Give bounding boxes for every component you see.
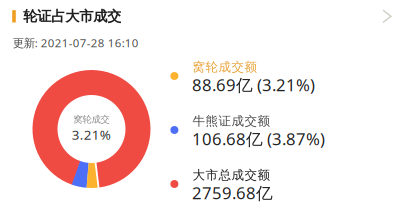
staticText: 轮证占大市成交 xyxy=(23,7,121,25)
staticText: 牛熊证成交额 xyxy=(193,113,271,129)
staticText: 窝轮成交额 xyxy=(193,59,258,75)
button[interactable]: 轮证占大市成交 xyxy=(0,0,400,33)
staticText: 大市总成交额 xyxy=(193,167,271,183)
staticText: 88.69亿 (3.21%) xyxy=(192,73,315,96)
staticText: 3.21% xyxy=(72,125,111,144)
staticText: 更新: 2021-07-28 16:10 xyxy=(13,35,139,50)
staticText: 106.68亿 (3.87%) xyxy=(192,127,325,150)
staticText: 窝轮成交 xyxy=(73,114,109,125)
staticText: 2759.68亿 xyxy=(192,181,273,204)
